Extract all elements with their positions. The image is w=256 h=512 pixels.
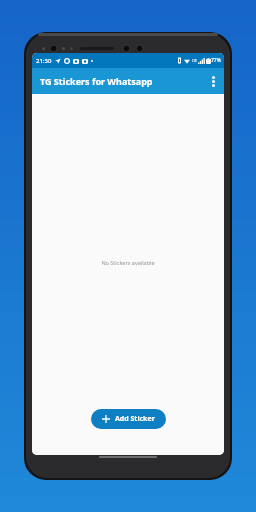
staticText: 21:50 [36,57,52,65]
staticText: TG Stickers for Whatsapp [40,75,153,87]
button[interactable]: Add Sticker [91,409,166,429]
button[interactable]: More options [202,70,224,92]
staticText: 77% [211,57,221,64]
staticText: No Stickers available [101,259,155,266]
staticText: Add Sticker [115,414,155,424]
staticText: LTE [192,59,197,63]
